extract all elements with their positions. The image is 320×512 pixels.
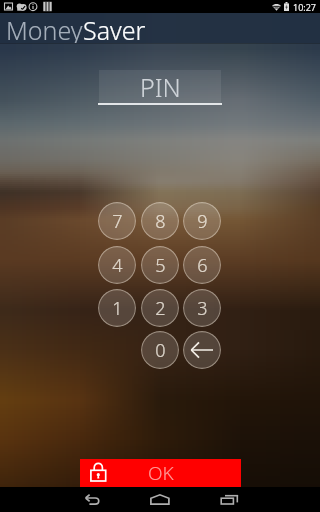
staticText: 5	[155, 253, 166, 278]
staticText: OK	[148, 460, 174, 486]
button[interactable]: 4	[98, 246, 136, 284]
staticText: 7	[112, 209, 123, 234]
button[interactable]: 1	[98, 289, 136, 327]
button[interactable]: 7	[98, 202, 136, 240]
staticText: 3	[197, 296, 208, 321]
staticText: Money	[6, 13, 83, 43]
button[interactable]: 6	[183, 246, 221, 284]
staticText: 4	[112, 253, 123, 278]
button[interactable]: Home	[130, 487, 190, 512]
staticText: PIN	[140, 70, 181, 103]
button[interactable]: OK	[80, 459, 241, 487]
staticText: Saver	[83, 13, 146, 43]
button[interactable]: 0	[141, 331, 179, 369]
button[interactable]: Backspace	[183, 331, 221, 369]
staticText: 6	[197, 253, 208, 278]
button[interactable]: 5	[141, 246, 179, 284]
staticText: 0	[155, 338, 166, 363]
button[interactable]: Back	[62, 487, 122, 512]
button[interactable]: PIN	[99, 70, 221, 103]
button[interactable]: 9	[183, 202, 221, 240]
staticText: 10:27	[293, 1, 317, 13]
button[interactable]: 3	[183, 289, 221, 327]
staticText: 2	[155, 296, 166, 321]
staticText: 8	[155, 209, 166, 234]
button[interactable]: Recents	[199, 487, 259, 512]
button[interactable]: 2	[141, 289, 179, 327]
staticText: 1	[112, 296, 123, 321]
button[interactable]: 8	[141, 202, 179, 240]
staticText: 9	[197, 209, 208, 234]
